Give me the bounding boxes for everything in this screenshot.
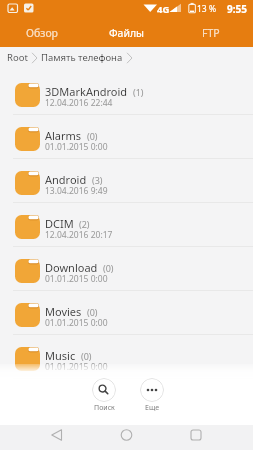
button[interactable]: Download	[0, 247, 253, 291]
staticText: Память телефона	[41, 51, 123, 64]
button[interactable]: Root	[7, 51, 28, 64]
staticText: DCIM	[45, 216, 74, 231]
button[interactable]: DCIM	[0, 203, 253, 247]
staticText: 3DMarkAndroid	[45, 84, 128, 99]
staticText: 13 %	[197, 3, 216, 15]
staticText: 12.04.2016 22:44	[45, 97, 113, 109]
staticText: Alarms	[45, 128, 82, 143]
staticText: 01.01.2015 0:00	[45, 317, 108, 329]
staticText: 01.01.2015 0:00	[45, 361, 108, 373]
staticText: Android	[45, 172, 87, 187]
staticText: (0)	[87, 306, 98, 318]
staticText: Еще	[145, 403, 160, 413]
button[interactable]: Файлы	[85, 18, 169, 47]
button[interactable]: 3DMarkAndroid	[0, 71, 253, 115]
button[interactable]	[92, 378, 116, 402]
staticText: Download	[45, 260, 98, 275]
staticText: (3)	[92, 174, 103, 186]
staticText: Поиск	[94, 403, 115, 413]
staticText: (2)	[79, 218, 90, 230]
button[interactable]	[140, 378, 164, 402]
staticText: (0)	[103, 262, 114, 274]
button[interactable]: Память телефона	[41, 51, 123, 64]
button[interactable]: Alarms	[0, 115, 253, 159]
staticText: Файлы	[109, 26, 145, 40]
staticText: (0)	[87, 130, 98, 142]
button[interactable]: Music	[0, 335, 253, 379]
staticText: 01.01.2015 0:00	[45, 141, 108, 153]
staticText: 01.01.2015 0:00	[45, 273, 108, 285]
button[interactable]: Android	[0, 159, 253, 203]
staticText: 9:55	[227, 2, 247, 16]
staticText: 12.04.2016 20:17	[45, 229, 113, 241]
staticText: (0)	[81, 350, 92, 362]
staticText: Root	[7, 51, 28, 64]
button[interactable]: Обзор	[0, 18, 85, 47]
staticText: Music	[45, 348, 76, 363]
staticText: 4G	[157, 3, 170, 16]
staticText: FTP	[202, 26, 220, 40]
button[interactable]: FTP	[169, 18, 253, 47]
staticText: 13.04.2016 9:49	[45, 185, 108, 197]
staticText: Обзор	[26, 26, 59, 40]
button[interactable]: Movies	[0, 291, 253, 335]
staticText: (1)	[133, 86, 144, 98]
staticText: Movies	[45, 304, 82, 319]
